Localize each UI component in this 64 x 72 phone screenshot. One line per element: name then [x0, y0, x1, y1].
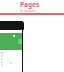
staticText: Pages [20, 0, 40, 9]
staticText: for business [20, 9, 35, 13]
